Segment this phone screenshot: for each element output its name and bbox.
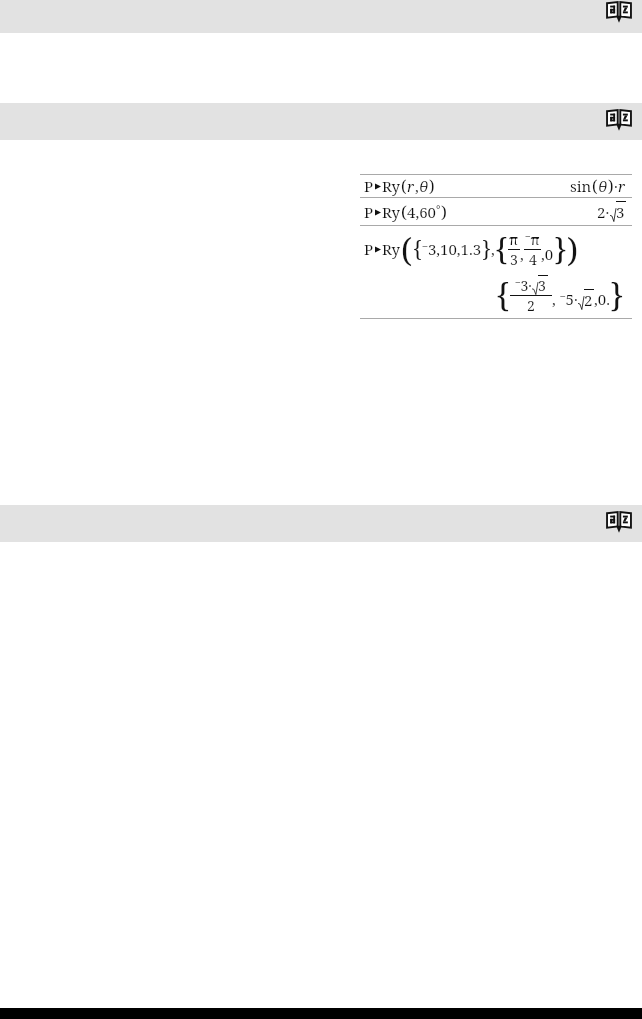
staticText: 3 [616,202,625,222]
staticText: r [407,176,415,196]
staticText: 2 [527,296,535,315]
staticText: } [554,229,567,270]
staticText: , [520,244,524,264]
staticText: , ⁻5· [552,289,578,309]
staticText: sin [570,176,592,196]
staticText: ° [436,201,441,216]
staticText: , [415,176,419,196]
staticText: 3 [510,250,518,269]
staticText: 2 [584,290,593,310]
staticText: 3 [538,276,546,295]
staticText: , [491,239,495,259]
staticText: ⁻π [525,230,540,249]
staticText: { [496,273,510,317]
staticText: ) [429,175,435,197]
staticText: ) [441,200,447,223]
staticText: ,0. [594,289,610,309]
staticText: P [364,176,374,196]
button[interactable]: Open reference guide [606,109,632,131]
staticText: ( [401,228,413,270]
staticText: ⁻3· [515,276,532,295]
button[interactable]: Open reference guide [0,0,642,33]
staticText: θ [419,176,429,196]
staticText: ) [608,175,614,197]
staticText: 4 [529,250,537,269]
button[interactable]: Open reference guide [0,505,642,542]
staticText: 2· [597,202,610,222]
staticText: r [618,176,626,196]
button[interactable]: Open reference guide [0,103,642,140]
staticText: · [614,176,618,196]
staticText: { [413,235,422,263]
button[interactable]: Open reference guide [606,1,632,23]
staticText: Ry [382,239,401,259]
staticText: Ry [382,202,401,222]
staticText: 4,60 [407,202,436,222]
staticText: ( [401,200,407,223]
staticText: } [610,273,624,317]
staticText: θ [598,176,608,196]
staticText: { [495,229,508,270]
staticText: ) [567,228,579,270]
staticText: P [364,202,374,222]
staticText: Ry [382,176,401,196]
staticText: } [482,235,491,263]
staticText: π [509,230,519,249]
staticText: ⁻3,10,1.3 [422,239,482,259]
staticText: ( [401,175,407,197]
staticText: P [364,239,374,259]
staticText: ,0 [541,244,554,264]
staticText: ( [592,175,598,197]
button[interactable]: Open reference guide [606,511,632,533]
